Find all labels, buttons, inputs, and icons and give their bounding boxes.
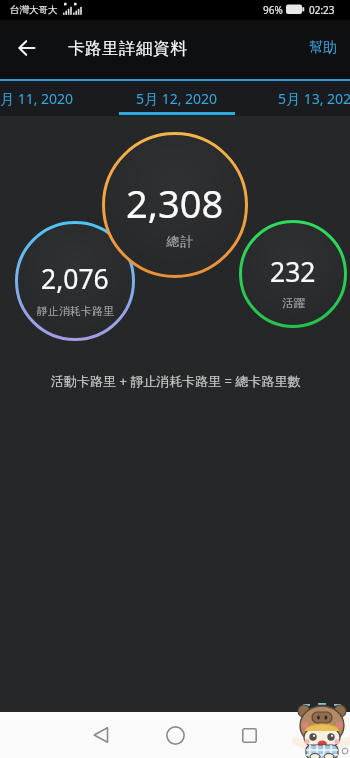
staticText: 232 — [270, 254, 316, 290]
button[interactable] — [110, 81, 244, 116]
staticText: 總計 — [166, 233, 194, 249]
button[interactable] — [158, 718, 192, 752]
staticText: 5月 12, 2020 — [136, 89, 218, 108]
button[interactable] — [84, 718, 118, 752]
button[interactable]: 幫助 — [300, 30, 346, 66]
staticText: 96% — [263, 3, 283, 17]
button[interactable] — [0, 81, 107, 116]
staticText: 幫助 — [309, 39, 337, 57]
button[interactable] — [8, 29, 46, 67]
button[interactable] — [247, 81, 350, 116]
staticText: 5月 13, 2020 — [278, 89, 350, 108]
staticText: 靜止消耗卡路里 — [37, 304, 114, 318]
staticText: 台灣大哥大 — [10, 4, 58, 16]
staticText: 卡路里詳細資料 — [68, 38, 187, 59]
staticText: 2,308 — [126, 177, 224, 229]
staticText: 02:23 — [309, 3, 335, 17]
staticText: 活躍 — [282, 296, 305, 310]
staticText: 活動卡路里 + 靜止消耗卡路里 = 總卡路里數 — [51, 372, 301, 390]
staticText: 2,076 — [41, 261, 109, 297]
button[interactable] — [232, 718, 266, 752]
staticText: 5月 11, 2020 — [0, 89, 74, 108]
